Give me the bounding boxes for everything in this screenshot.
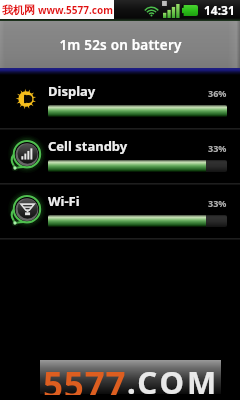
- staticText: .COM: [127, 361, 220, 395]
- staticText: Cell standby: [48, 137, 128, 155]
- staticText: 1m 52s on battery: [59, 36, 182, 54]
- button[interactable]: Wi-Fi: [0, 185, 240, 238]
- staticText: Display: [48, 82, 96, 100]
- staticText: 33%: [208, 197, 227, 209]
- staticText: 5577: [43, 361, 127, 395]
- staticText: Wi-Fi: [48, 192, 80, 210]
- button[interactable]: Display: [0, 75, 240, 128]
- staticText: www.5577.com: [38, 3, 113, 17]
- button[interactable]: Cell standby: [0, 130, 240, 183]
- staticText: 36%: [208, 87, 227, 99]
- staticText: 我机网: [2, 3, 35, 17]
- staticText: 14:31: [204, 2, 235, 18]
- staticText: 33%: [208, 142, 227, 154]
